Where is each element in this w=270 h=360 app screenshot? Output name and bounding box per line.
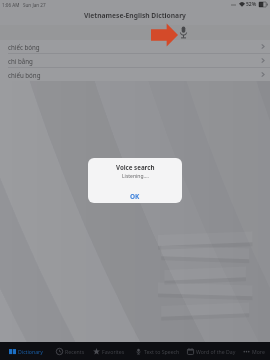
staticText: Listening.... (122, 173, 149, 180)
button[interactable]: Recents (52, 342, 88, 360)
button[interactable]: chiếu bóng (0, 68, 270, 81)
button[interactable]: Favorites (88, 342, 130, 360)
staticText: Vietnamese-English Dictionary (84, 11, 186, 20)
staticText: Favorites (102, 348, 125, 355)
staticText: chi bằng (8, 57, 33, 65)
staticText: chiếu bóng (8, 71, 41, 79)
button[interactable]: Dictionary (0, 342, 52, 360)
staticText: More (252, 348, 265, 355)
button[interactable]: Text to Speech (130, 342, 184, 360)
button[interactable]: Voice search (179, 25, 188, 40)
staticText: OK (130, 192, 140, 201)
button[interactable]: chiếc bóng (0, 40, 270, 53)
staticText: Word of the Day (196, 348, 236, 355)
staticText: Recents (65, 348, 85, 355)
staticText: Text to Speech (144, 348, 180, 355)
staticText: 1:06 AM Sun Jan 27 (2, 2, 46, 8)
button[interactable]: chi bằng (0, 54, 270, 67)
staticText: 52% (246, 1, 257, 8)
staticText: Dictionary (18, 348, 43, 355)
button[interactable]: More (238, 342, 270, 360)
staticText: chiếc bóng (8, 43, 40, 51)
button[interactable]: OK (88, 189, 182, 203)
button[interactable]: Word of the Day (184, 342, 238, 360)
staticText: Voice search (116, 163, 155, 171)
